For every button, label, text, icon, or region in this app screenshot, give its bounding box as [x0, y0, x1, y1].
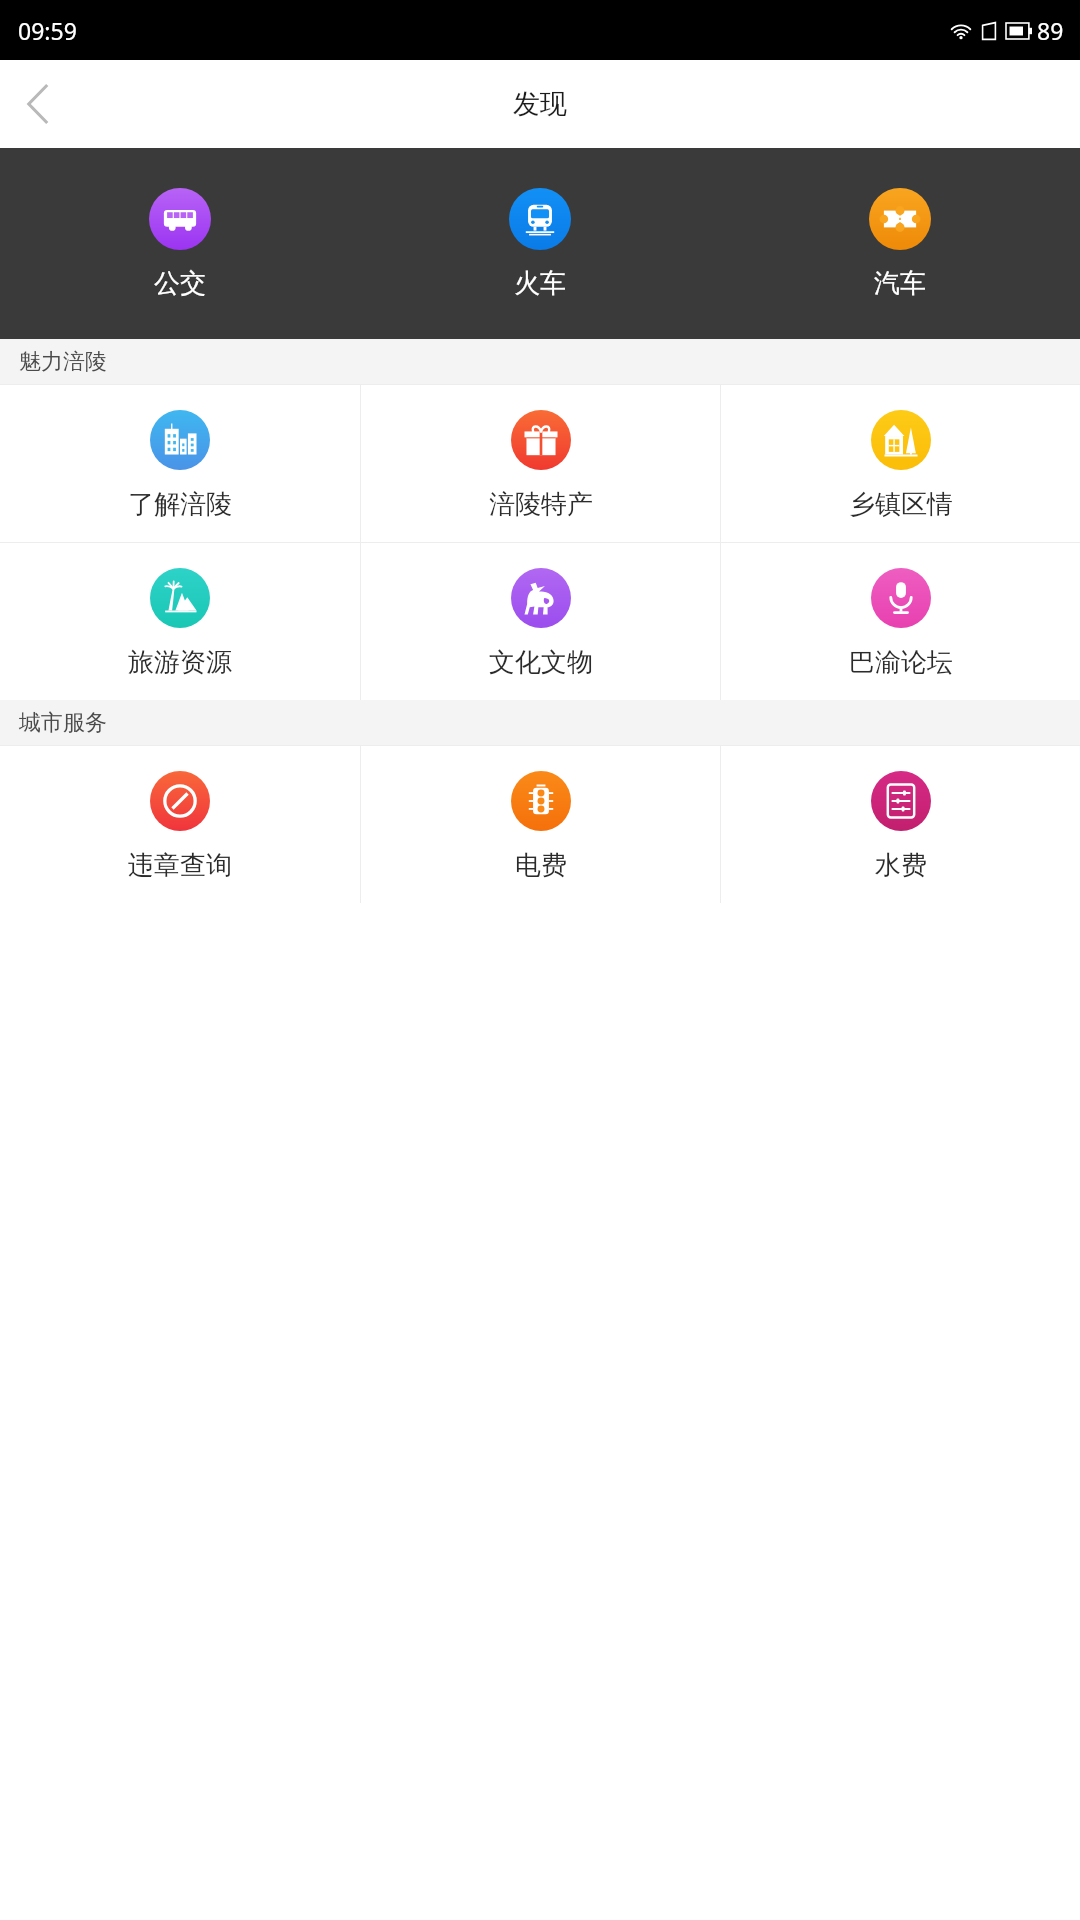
staticText: 火车: [514, 267, 566, 300]
staticText: 09:59: [18, 15, 77, 46]
staticText: 旅游资源: [128, 646, 232, 679]
button[interactable]: 巴渝论坛: [721, 543, 1080, 700]
button[interactable]: 水费: [721, 746, 1080, 903]
button[interactable]: 火车: [360, 148, 720, 339]
button[interactable]: 乡镇区情: [721, 385, 1080, 542]
staticText: 89: [1037, 15, 1064, 46]
button[interactable]: 涪陵特产: [361, 385, 720, 542]
button[interactable]: 了解涪陵: [0, 385, 360, 542]
button[interactable]: 旅游资源: [0, 543, 360, 700]
button[interactable]: 汽车: [720, 148, 1080, 339]
staticText: 城市服务: [19, 709, 107, 737]
staticText: 乡镇区情: [849, 488, 953, 521]
staticText: 汽车: [874, 267, 926, 300]
button[interactable]: 返回: [0, 66, 76, 142]
button[interactable]: 违章查询: [0, 746, 360, 903]
staticText: 水费: [875, 849, 927, 882]
staticText: 了解涪陵: [128, 488, 232, 521]
button[interactable]: 电费: [361, 746, 720, 903]
staticText: 公交: [154, 267, 206, 300]
staticText: 涪陵特产: [489, 488, 593, 521]
staticText: 魅力涪陵: [19, 348, 107, 376]
staticText: 违章查询: [128, 849, 232, 882]
button[interactable]: 公交: [0, 148, 360, 339]
staticText: 电费: [515, 849, 567, 882]
button[interactable]: 文化文物: [361, 543, 720, 700]
staticText: 文化文物: [489, 646, 593, 679]
staticText: 发现: [513, 87, 567, 121]
staticText: 巴渝论坛: [849, 646, 953, 679]
